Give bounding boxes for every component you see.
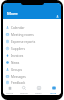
staticText: Meeting rooms <box>11 33 34 37</box>
button[interactable]: Tasks <box>31 85 46 95</box>
staticText: More <box>50 91 57 94</box>
button[interactable]: Groups <box>3 66 61 73</box>
button[interactable]: Invoices <box>3 52 61 59</box>
button[interactable]: Search <box>17 85 31 95</box>
button[interactable]: More <box>46 85 61 95</box>
button[interactable]: Suppliers <box>3 45 61 52</box>
staticText: Groups <box>11 68 22 72</box>
button[interactable]: Home <box>3 85 17 95</box>
staticText: Home <box>6 91 14 94</box>
button[interactable]: Account <box>55 14 60 19</box>
staticText: Messages <box>11 75 26 79</box>
staticText: Tasks <box>35 91 42 94</box>
button[interactable]: More <box>7 10 18 16</box>
staticText: Expense reports <box>11 40 36 44</box>
staticText: Calendar <box>11 26 25 30</box>
staticText: News <box>11 61 20 65</box>
button[interactable]: Expense reports <box>3 38 61 45</box>
button[interactable]: Meeting rooms <box>3 31 61 38</box>
button[interactable]: Messages <box>3 73 61 80</box>
staticText: Suppliers <box>11 47 25 51</box>
button[interactable]: Calendar <box>3 24 61 31</box>
button[interactable]: Feedback <box>3 80 61 85</box>
staticText: Feedback <box>11 81 26 85</box>
staticText: Invoices <box>11 54 24 58</box>
button[interactable]: News <box>3 59 61 66</box>
staticText: Search <box>20 91 28 94</box>
